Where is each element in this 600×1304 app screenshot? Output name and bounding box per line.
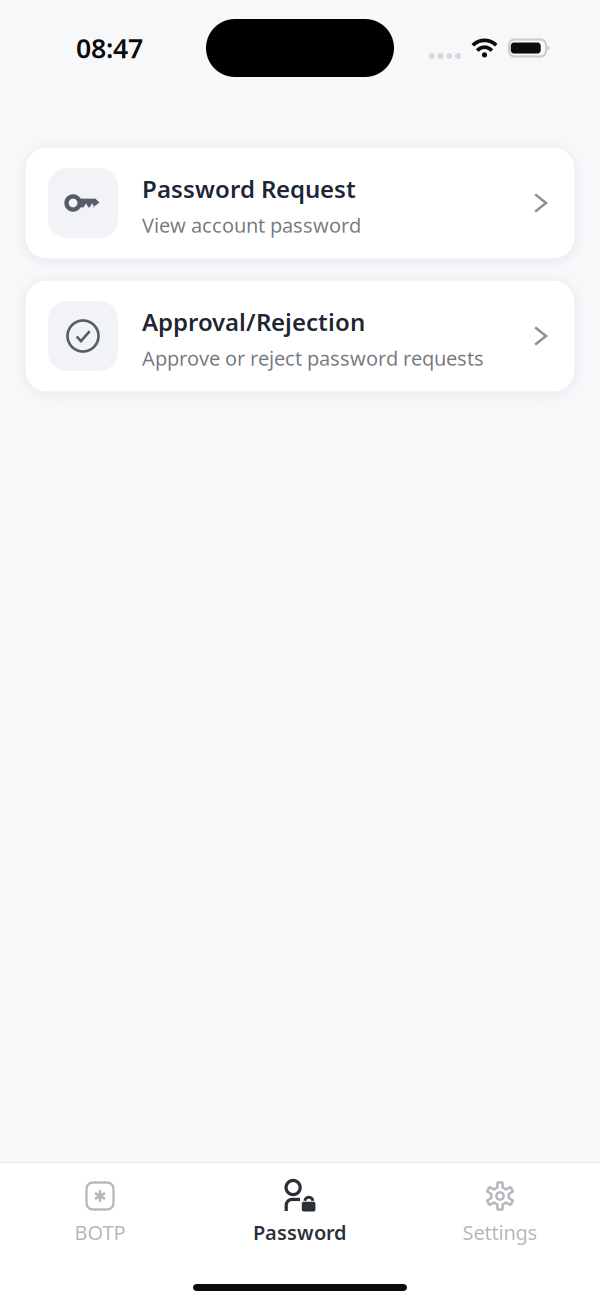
staticText: 08:47 xyxy=(76,30,143,66)
button[interactable]: Password Request xyxy=(25,147,575,259)
staticText: Approval/Rejection xyxy=(142,306,365,338)
staticText: Approve or reject password requests xyxy=(142,345,484,371)
button[interactable]: Approval/Rejection xyxy=(25,280,575,392)
button[interactable]: Password xyxy=(200,1163,400,1254)
staticText: Password xyxy=(253,1219,347,1246)
staticText: View account password xyxy=(142,212,361,238)
button[interactable]: Settings xyxy=(400,1163,600,1254)
staticText: BOTP xyxy=(74,1219,125,1246)
staticText: Password Request xyxy=(142,173,356,205)
staticText: Settings xyxy=(462,1219,537,1246)
button[interactable]: BOTP xyxy=(0,1163,200,1254)
